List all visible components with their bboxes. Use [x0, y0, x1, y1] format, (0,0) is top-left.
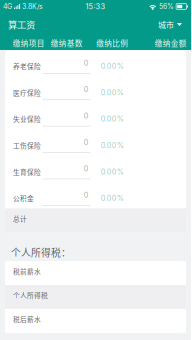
staticText: 缴纳金额 [155, 37, 187, 48]
staticText: 个人所得税： [11, 245, 71, 259]
staticText: 税后薪水 [13, 314, 41, 324]
staticText: 公积金 [13, 193, 34, 203]
staticText: 0.00% [101, 167, 124, 176]
staticText: 0 [84, 85, 89, 94]
staticText: 0.00% [101, 194, 124, 203]
staticText: 0 [84, 111, 89, 120]
staticText: 算工资 [8, 18, 35, 31]
staticText: 缴纳比例 [96, 37, 128, 48]
staticText: 医疗保险 [13, 88, 41, 97]
staticText: 总计 [13, 214, 27, 223]
staticText: 0 [84, 191, 89, 199]
staticText: 缴纳项目 [13, 37, 45, 48]
staticText: 0 [84, 164, 89, 173]
staticText: 0 [84, 138, 89, 147]
staticText: 4G [3, 2, 12, 11]
staticText: 养老保险 [13, 61, 41, 71]
staticText: 15:33 [85, 2, 105, 11]
staticText: 0.00% [101, 114, 124, 123]
staticText: 工伤保险 [13, 140, 41, 150]
staticText: 0.00% [101, 62, 124, 71]
staticText: 失业保险 [13, 114, 41, 124]
staticText: 3.8K/s [22, 2, 43, 11]
staticText: 城市 [158, 19, 174, 30]
button[interactable]: 城市 [154, 14, 186, 35]
staticText: 生育保险 [13, 167, 41, 177]
staticText: 个人所得税 [13, 290, 48, 300]
staticText: 0.00% [101, 141, 124, 150]
staticText: 缴纳基数 [51, 37, 83, 48]
staticText: 56% [159, 2, 174, 11]
staticText: 税前薪水 [13, 267, 41, 276]
staticText: 0.00% [101, 88, 124, 97]
staticText: 0 [84, 59, 89, 67]
